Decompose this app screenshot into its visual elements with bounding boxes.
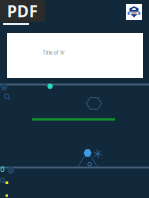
button[interactable]: Certification badge bbox=[126, 4, 142, 20]
button[interactable]: PDF bbox=[0, 0, 45, 22]
staticText: Title of 'A' bbox=[42, 49, 64, 56]
staticText: PDF bbox=[7, 0, 38, 22]
